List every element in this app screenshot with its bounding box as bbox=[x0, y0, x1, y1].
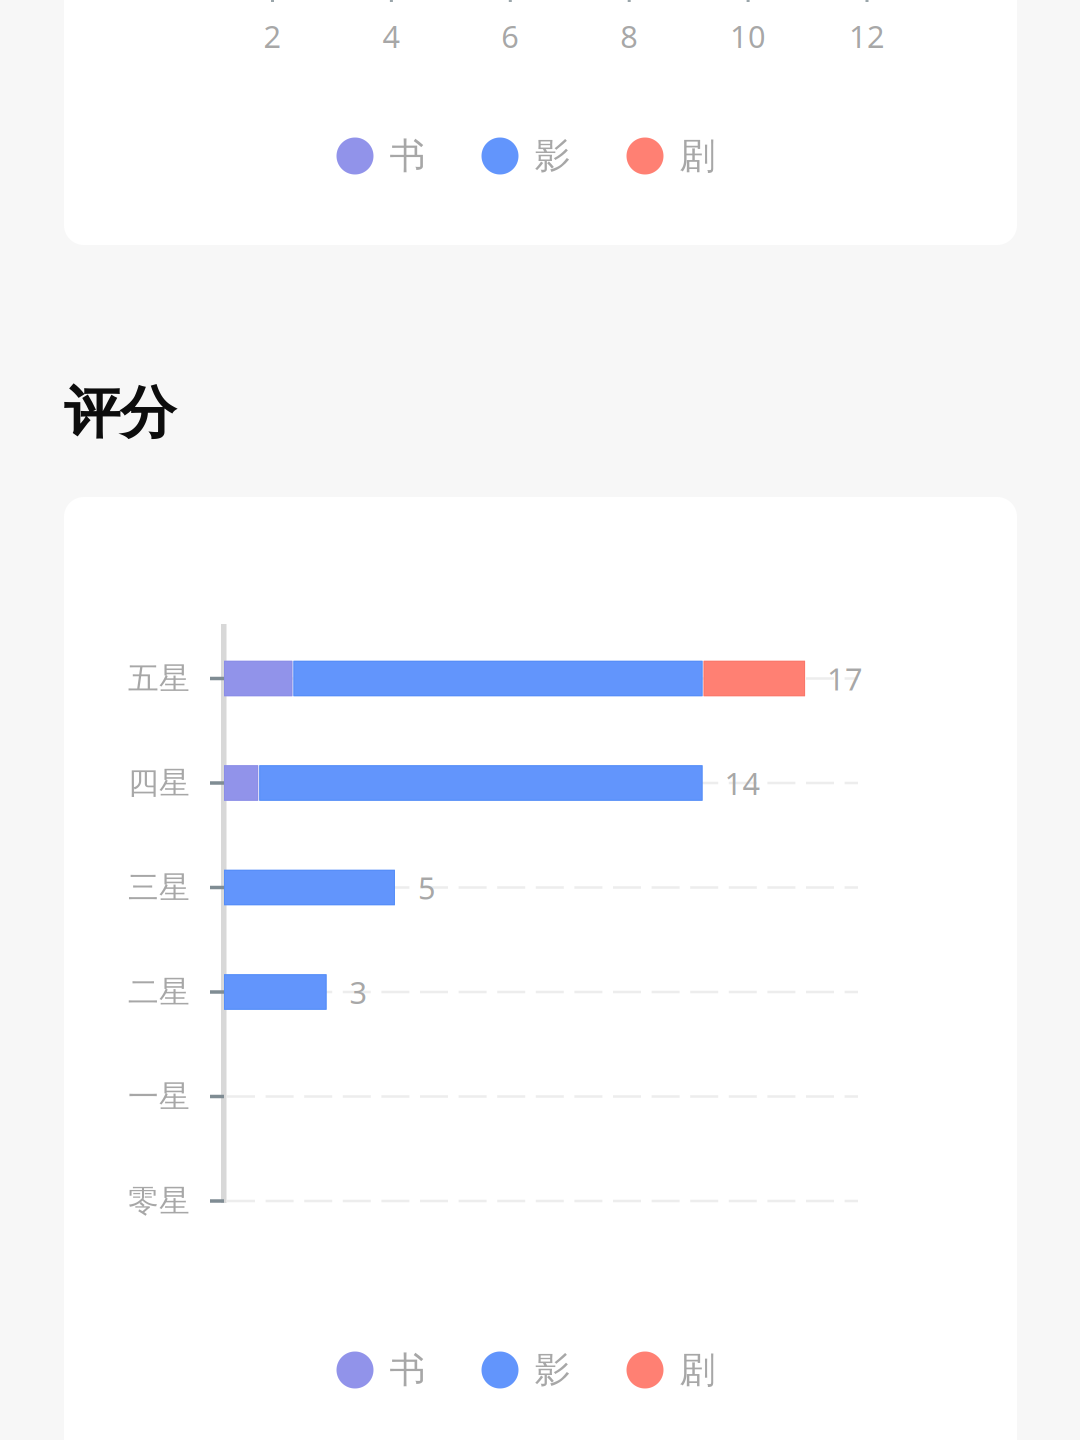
button[interactable]: 影 bbox=[481, 1348, 570, 1392]
button[interactable]: 影 bbox=[481, 134, 570, 178]
staticText: 4 bbox=[382, 16, 400, 56]
button[interactable]: 剧 bbox=[626, 134, 715, 178]
button[interactable]: 书 bbox=[336, 1348, 425, 1392]
staticText: 三星 bbox=[128, 869, 190, 906]
button[interactable]: 剧 bbox=[626, 1348, 715, 1392]
staticText: 书 bbox=[389, 134, 425, 178]
staticText: 剧 bbox=[679, 134, 715, 178]
staticText: 影 bbox=[534, 1348, 570, 1392]
staticText: 17 bbox=[827, 658, 863, 699]
staticText: 10 bbox=[730, 16, 766, 56]
staticText: 14 bbox=[724, 763, 760, 803]
staticText: 二星 bbox=[128, 973, 190, 1011]
staticText: 剧 bbox=[679, 1348, 715, 1392]
staticText: 12 bbox=[849, 16, 885, 56]
staticText: 零星 bbox=[128, 1182, 190, 1220]
staticText: 五星 bbox=[128, 660, 190, 697]
staticText: 影 bbox=[534, 134, 570, 178]
staticText: 2 bbox=[263, 16, 281, 56]
staticText: 5 bbox=[418, 867, 436, 908]
staticText: 书 bbox=[389, 1348, 425, 1392]
staticText: 6 bbox=[501, 16, 519, 56]
staticText: 一星 bbox=[128, 1078, 190, 1115]
staticText: 评分 bbox=[64, 379, 176, 447]
staticText: 8 bbox=[620, 16, 638, 56]
staticText: 四星 bbox=[128, 764, 190, 802]
staticText: 3 bbox=[349, 972, 367, 1012]
button[interactable]: 书 bbox=[336, 134, 425, 178]
